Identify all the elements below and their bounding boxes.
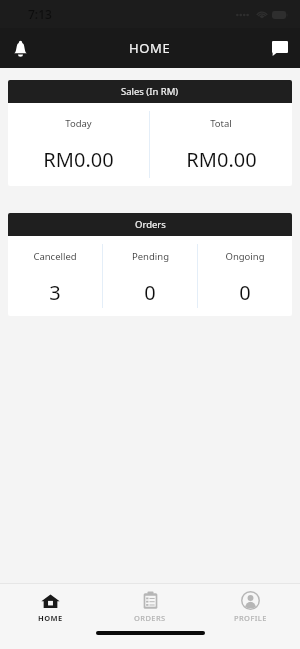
staticText: 0 [144,279,156,306]
staticText: RM0.00 [186,146,257,173]
staticText: Total [210,117,232,130]
staticText: Orders [135,218,166,231]
staticText: Sales (In RM) [121,85,179,98]
staticText: Pending [132,250,169,263]
staticText: PROFILE [234,613,267,623]
button[interactable]: Orders [8,213,292,316]
staticText: 3 [49,279,61,306]
staticText: 7:13 [28,6,52,22]
staticText: Cancelled [33,250,77,263]
staticText: HOME [129,39,171,57]
button[interactable]: HOME [0,584,100,629]
staticText: Today [65,117,92,130]
staticText: ORDERS [134,613,166,623]
button[interactable]: PROFILE [200,584,300,629]
staticText: RM0.00 [43,146,114,173]
button[interactable]: Messages [260,28,300,68]
staticText: 0 [239,279,251,306]
staticText: HOME [38,613,63,623]
button[interactable]: Notifications [0,28,40,68]
staticText: Ongoing [225,250,265,263]
button[interactable]: Sales (In RM) [8,80,292,186]
button[interactable]: ORDERS [100,584,200,629]
